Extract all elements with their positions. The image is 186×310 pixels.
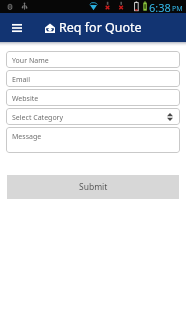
button[interactable]: Email [6, 70, 180, 87]
button[interactable]: Message [6, 127, 180, 153]
staticText: Website [12, 94, 39, 104]
staticText: Email [12, 75, 30, 85]
staticText: 6:38 [149, 0, 171, 13]
button[interactable]: Select Category [6, 108, 180, 125]
button[interactable]: Open navigation menu [0, 13, 33, 42]
staticText: Message [12, 132, 42, 142]
staticText: Your Name [12, 56, 49, 66]
staticText: Req for Quote [59, 19, 142, 36]
staticText: Submit [79, 181, 108, 193]
button[interactable]: Your Name [6, 51, 180, 68]
staticText: Select Category [12, 113, 64, 123]
button[interactable]: Website [6, 89, 180, 106]
staticText: PM [172, 4, 183, 14]
button[interactable]: Submit [7, 175, 179, 199]
